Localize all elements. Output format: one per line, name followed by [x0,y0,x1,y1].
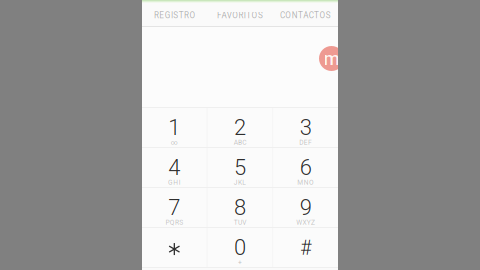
staticText: 3 [300,115,312,140]
staticText: 6 [300,155,312,180]
button[interactable]: FAVORITOS [207,3,273,26]
staticText: ∞ [171,138,178,146]
button[interactable]: # [273,228,338,267]
button[interactable]: 6 [273,148,338,187]
staticText: 5 [234,155,246,180]
staticText: 7 [168,195,180,220]
staticText: MNO [297,178,314,186]
button[interactable]: REGISTRO [142,3,207,26]
staticText: 4 [168,155,180,180]
button[interactable]: CONTACTOS [273,3,338,26]
staticText: 0 [234,235,246,260]
staticText: REGISTRO [154,11,195,20]
button[interactable]: 3 [273,108,338,147]
staticText: CONTACTOS [280,11,331,20]
button[interactable]: 1 [142,108,207,147]
staticText: DEF [299,138,312,146]
button[interactable]: 9 [273,188,338,227]
button[interactable]: 0 [208,228,272,267]
staticText: ABC [234,138,246,146]
staticText: 1 [168,115,180,140]
staticText: # [300,237,311,259]
staticText: 9 [300,195,312,220]
button[interactable] [142,228,207,267]
staticText: 8 [234,195,246,220]
staticText: GHI [168,178,181,186]
button[interactable]: 5 [208,148,272,187]
staticText: FAVORITOS [217,11,263,20]
staticText: + [238,258,242,266]
staticText: 2 [234,115,246,140]
button[interactable]: 8 [208,188,272,227]
staticText: m [323,48,339,69]
button[interactable]: 4 [142,148,207,187]
button[interactable]: 7 [142,188,207,227]
staticText: TUV [234,218,246,226]
staticText: JKL [234,178,246,186]
button[interactable]: 2 [208,108,272,147]
staticText: WXYZ [296,218,315,226]
staticText: PQRS [165,218,183,226]
